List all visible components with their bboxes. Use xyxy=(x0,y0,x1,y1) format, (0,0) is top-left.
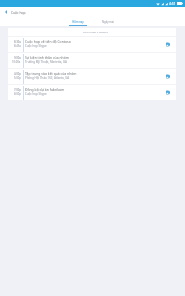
staticText: Sự kiện tinh thần của nhóm xyxy=(25,55,69,60)
staticText: Cuộc họp Skype xyxy=(25,44,47,48)
staticText: 5:00p xyxy=(14,76,21,80)
staticText: 8:30a xyxy=(14,40,21,44)
staticText: 8:45a xyxy=(14,44,21,48)
staticText: Tập trung vào kết quả của nhóm xyxy=(25,71,77,76)
button[interactable]: 9:00a xyxy=(8,53,176,68)
staticText: Phòng Hội Thảo 163, Atlanta, GA xyxy=(25,76,70,80)
button[interactable]: 8:30a xyxy=(8,37,176,52)
staticText: Cuộc họp Skype xyxy=(25,92,47,96)
button[interactable]: Tham gia cuộc họp Skype xyxy=(163,88,173,98)
button[interactable]: Ngày mai xyxy=(99,17,117,26)
button[interactable]: 7:00p xyxy=(8,85,176,100)
button[interactable]: Tham gia cuộc họp Skype xyxy=(163,72,173,82)
button[interactable]: Hôm nay xyxy=(69,17,87,26)
staticText: Cuộc họp xyxy=(11,10,26,14)
staticText: 4:51 xyxy=(169,1,176,6)
staticText: Trường Mỹ Thuật, Marietta, GA xyxy=(25,60,67,64)
staticText: 7:00p xyxy=(14,88,21,92)
button[interactable]: Quay lại xyxy=(0,7,11,17)
staticText: 9:00a xyxy=(14,56,21,60)
staticText: Ngày mai xyxy=(102,20,114,24)
staticText: 10:00a xyxy=(12,60,21,64)
staticText: 4:00p xyxy=(14,72,21,76)
staticText: Cuộc họp về tiến độ Contoso xyxy=(25,39,71,44)
staticText: Thứ 3 ngày 4 tháng 6 xyxy=(83,30,108,33)
button[interactable]: Tham gia cuộc họp Skype xyxy=(163,40,173,50)
staticText: Đồng bộ dự án fabrikam xyxy=(25,87,65,92)
button[interactable]: 4:00p xyxy=(8,69,176,84)
staticText: 8:00p xyxy=(14,92,21,96)
staticText: Hôm nay xyxy=(72,20,84,24)
